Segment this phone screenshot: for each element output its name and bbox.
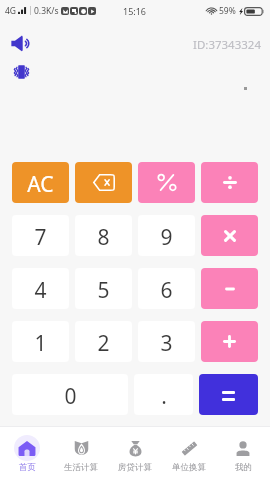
staticText: 生活计算 [64,462,98,473]
button[interactable]: Minus [201,268,258,309]
staticText: 4 [34,276,47,305]
button[interactable]: 单位换算 [162,427,216,480]
button[interactable]: Plus [201,321,258,362]
button[interactable]: Divide [201,162,258,203]
staticText: 15:16 [123,5,147,17]
staticText: 3 [160,329,173,358]
button[interactable]: 1 [12,321,69,362]
staticText: 5 [97,276,110,305]
button[interactable]: 首页 [0,427,54,480]
button[interactable]: Percent [138,162,195,203]
button[interactable]: 0 [12,374,128,415]
staticText: 房贷计算 [118,462,152,473]
staticText: 4G [5,5,17,17]
button[interactable]: Multiply [201,215,258,256]
staticText: 2 [97,329,110,358]
button[interactable]: . [134,374,193,415]
staticText: 59% [219,5,236,17]
staticText: 我的 [235,462,252,473]
button[interactable]: AC [12,162,69,203]
button[interactable]: 9 [138,215,195,256]
button[interactable]: 我的 [216,427,270,480]
button[interactable]: 3 [138,321,195,362]
staticText: 0.3K/s [34,5,59,17]
staticText: 6 [160,276,173,305]
button[interactable]: Equals [199,374,258,415]
button[interactable]: 6 [138,268,195,309]
staticText: ID:37343324 [193,37,261,53]
button[interactable]: 2 [75,321,132,362]
button[interactable]: 4 [12,268,69,309]
button[interactable]: 生活计算 [54,427,108,480]
button[interactable]: 房贷计算 [108,427,162,480]
staticText: AC [27,170,54,199]
button[interactable]: 8 [75,215,132,256]
button[interactable]: Delete [75,162,132,203]
staticText: . [161,382,167,411]
button[interactable]: 7 [12,215,69,256]
staticText: 7 [34,223,47,252]
staticText: 1 [34,329,47,358]
staticText: 单位换算 [172,462,206,473]
button[interactable]: Sound on [6,30,33,57]
staticText: 0 [64,382,77,411]
staticText: 8 [97,223,110,252]
button[interactable]: Vibration on [8,59,34,85]
button[interactable]: 5 [75,268,132,309]
staticText: 首页 [19,462,36,473]
staticText: 9 [160,223,173,252]
